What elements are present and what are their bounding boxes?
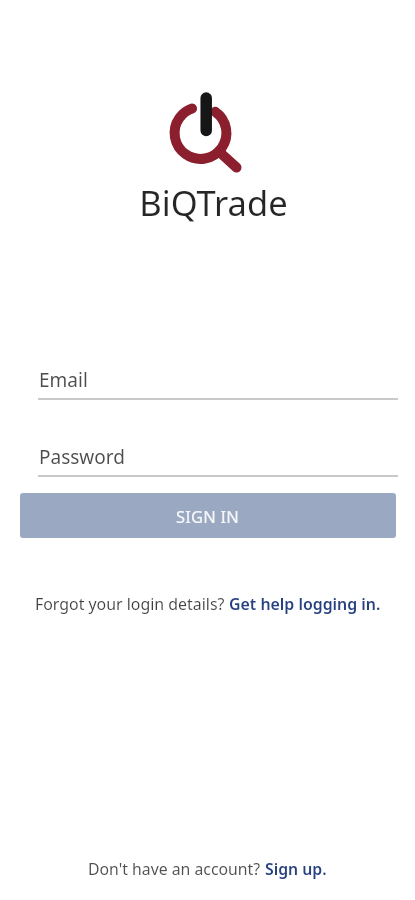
staticText: Password [39,444,125,470]
staticText: Don't have an account? [88,858,265,880]
button[interactable]: Sign up. [265,858,327,880]
button[interactable]: Email [38,362,398,400]
button[interactable]: SIGN IN [20,493,396,538]
button[interactable]: Password [38,440,398,477]
staticText: BiQTrade [6,179,415,226]
staticText: SIGN IN [176,505,240,527]
button[interactable]: Get help logging in. [229,593,381,615]
staticText: Email [39,367,88,393]
staticText: Forgot your login details? [35,593,229,615]
